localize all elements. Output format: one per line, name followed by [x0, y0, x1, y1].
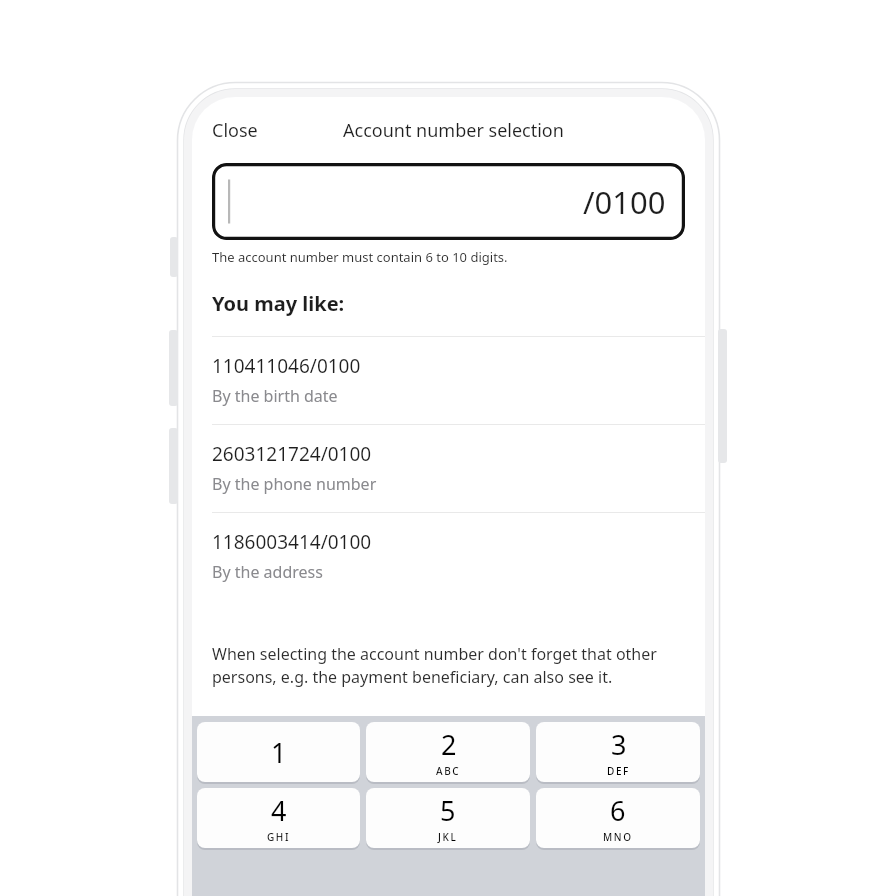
staticText: 2603121724/0100	[212, 441, 372, 467]
staticText: By the address	[212, 561, 323, 583]
staticText: By the birth date	[212, 385, 338, 407]
button[interactable]: 3	[536, 722, 700, 782]
staticText: Account number selection	[343, 118, 564, 143]
button[interactable]: /0100	[212, 163, 685, 240]
staticText: 1186003414/0100	[212, 529, 372, 555]
button[interactable]: 2	[366, 722, 530, 782]
button[interactable]: 5	[366, 788, 530, 848]
staticText: 110411046/0100	[212, 353, 361, 379]
button[interactable]: 6	[536, 788, 700, 848]
staticText: MNO	[603, 830, 633, 844]
button[interactable]: Close	[198, 110, 272, 151]
staticText: You may like:	[212, 290, 345, 317]
staticText: 2	[441, 726, 457, 763]
staticText: The account number must contain 6 to 10 …	[212, 248, 508, 266]
button[interactable]: 1186003414/0100	[192, 513, 705, 600]
staticText: 6	[610, 792, 626, 829]
staticText: ABC	[436, 764, 461, 778]
staticText: DEF	[607, 764, 630, 778]
staticText: GHI	[267, 830, 291, 844]
staticText: 1	[271, 734, 287, 771]
staticText: When selecting the account number don't …	[212, 643, 687, 688]
staticText: By the phone number	[212, 473, 377, 495]
button[interactable]: 110411046/0100	[192, 337, 705, 424]
button[interactable]: 2603121724/0100	[192, 425, 705, 512]
staticText: 4	[271, 792, 287, 829]
staticText: 5	[440, 792, 456, 829]
button[interactable]: 1	[197, 722, 360, 782]
staticText: 3	[611, 726, 627, 763]
staticText: /0100	[583, 181, 666, 223]
staticText: Close	[212, 118, 258, 143]
staticText: JKL	[438, 830, 458, 844]
button[interactable]: 4	[197, 788, 360, 848]
